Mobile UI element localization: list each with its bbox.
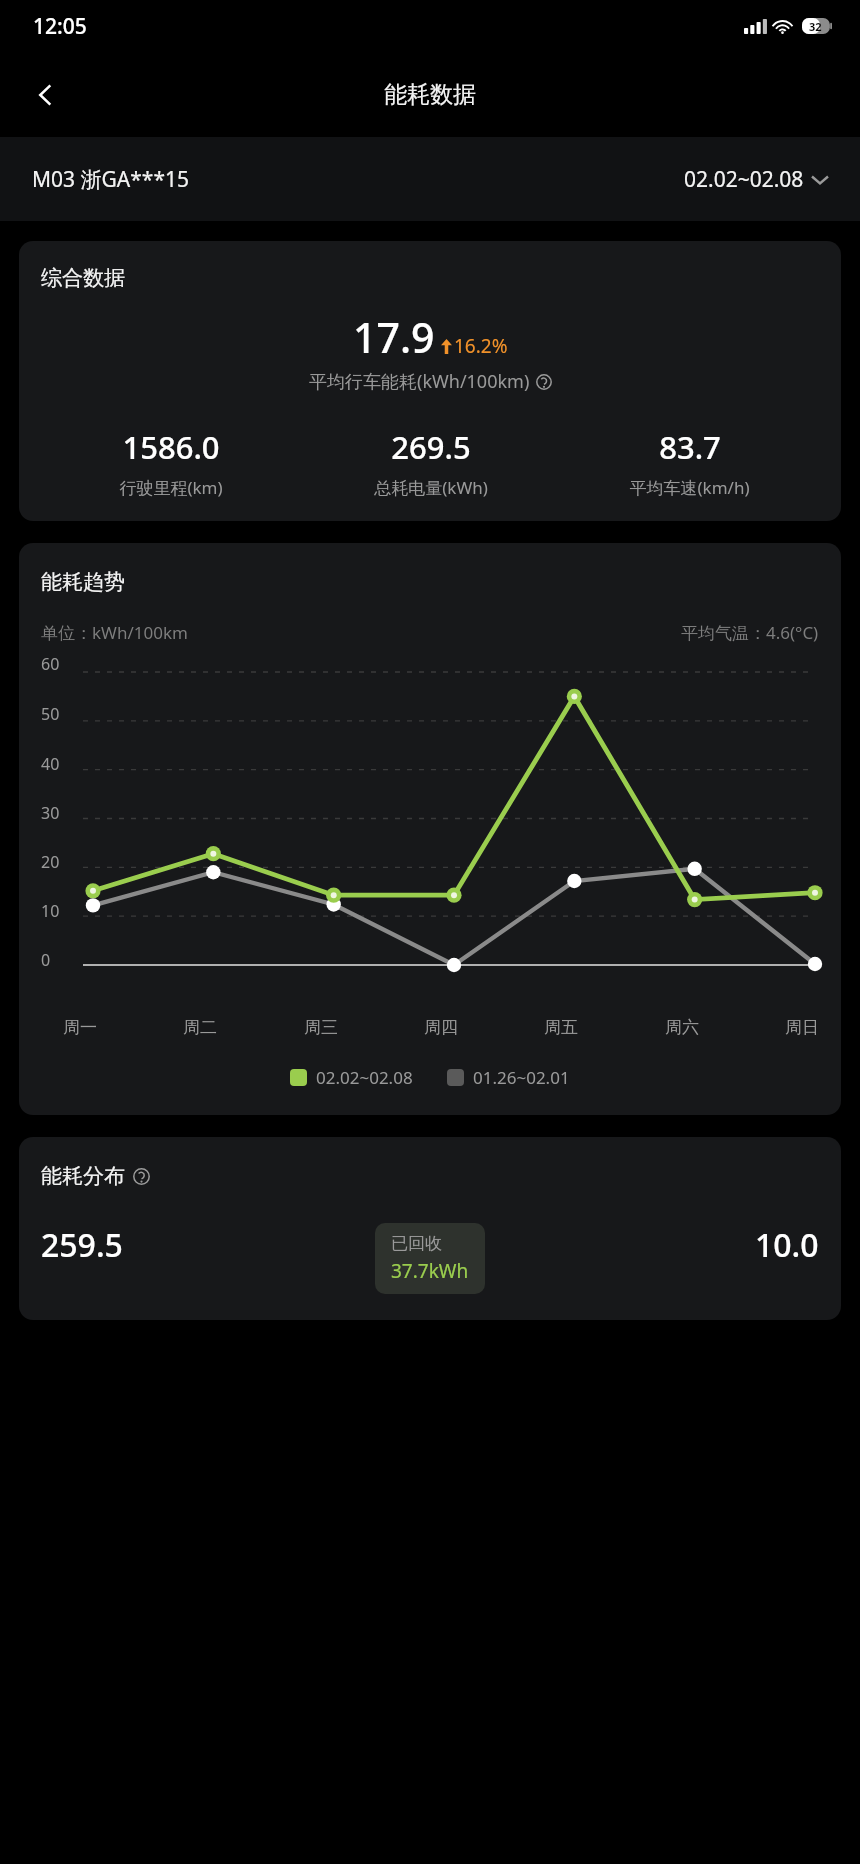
staticText: 周六	[665, 1017, 699, 1038]
staticText: 269.5	[391, 426, 471, 468]
button[interactable]: 能耗趋势	[19, 543, 841, 1115]
button[interactable]: 269.5	[301, 426, 560, 499]
staticText: 0	[41, 949, 51, 971]
staticText: 能耗分布	[41, 1163, 125, 1189]
staticText: 周日	[785, 1017, 819, 1038]
staticText: 16.2%	[454, 333, 508, 359]
staticText: 周五	[544, 1017, 578, 1038]
staticText: 10	[41, 900, 60, 922]
button[interactable]: Back	[18, 67, 74, 123]
staticText: 行驶里程(km)	[119, 476, 223, 499]
staticText: 01.26~02.01	[473, 1066, 570, 1089]
staticText: 32	[809, 19, 822, 34]
staticText: 已回收	[391, 1233, 442, 1254]
button[interactable]: 01.26~02.01	[447, 1066, 570, 1089]
staticText: 02.02~02.08	[316, 1066, 413, 1089]
staticText: 平均气温：4.6(°C)	[681, 621, 819, 644]
button[interactable]: 83.7	[560, 426, 819, 499]
staticText: 平均行车能耗(kWh/100km)	[309, 369, 530, 394]
staticText: 单位：kWh/100km	[41, 621, 188, 644]
button[interactable]: 1586.0	[41, 426, 301, 499]
staticText: 周四	[424, 1017, 458, 1038]
staticText: 40	[41, 753, 60, 775]
button[interactable]: 02.02~02.08	[684, 165, 828, 194]
staticText: 30	[41, 802, 60, 824]
staticText: 综合数据	[41, 265, 125, 291]
staticText: 60	[41, 653, 60, 675]
staticText: 10.0	[755, 1223, 819, 1267]
staticText: 12:05	[33, 12, 87, 41]
staticText: 总耗电量(kWh)	[374, 476, 488, 499]
button[interactable]: 综合数据	[19, 241, 841, 521]
staticText: 平均车速(km/h)	[629, 476, 750, 499]
staticText: M03 浙GA***15	[32, 165, 189, 194]
staticText: 1586.0	[122, 426, 220, 468]
staticText: 83.7	[659, 426, 721, 468]
button[interactable]: 能耗分布	[19, 1137, 841, 1320]
staticText: 周二	[183, 1017, 217, 1038]
staticText: 能耗趋势	[41, 569, 125, 595]
staticText: 259.5	[41, 1223, 123, 1267]
staticText: 37.7kWh	[391, 1258, 469, 1284]
staticText: 20	[41, 851, 60, 873]
button[interactable]: 02.02~02.08	[290, 1066, 413, 1089]
staticText: 周一	[63, 1017, 97, 1038]
staticText: 50	[41, 703, 60, 725]
staticText: 周三	[304, 1017, 338, 1038]
staticText: 17.9	[353, 309, 435, 365]
staticText: 02.02~02.08	[684, 165, 804, 194]
staticText: 能耗数据	[384, 80, 476, 109]
